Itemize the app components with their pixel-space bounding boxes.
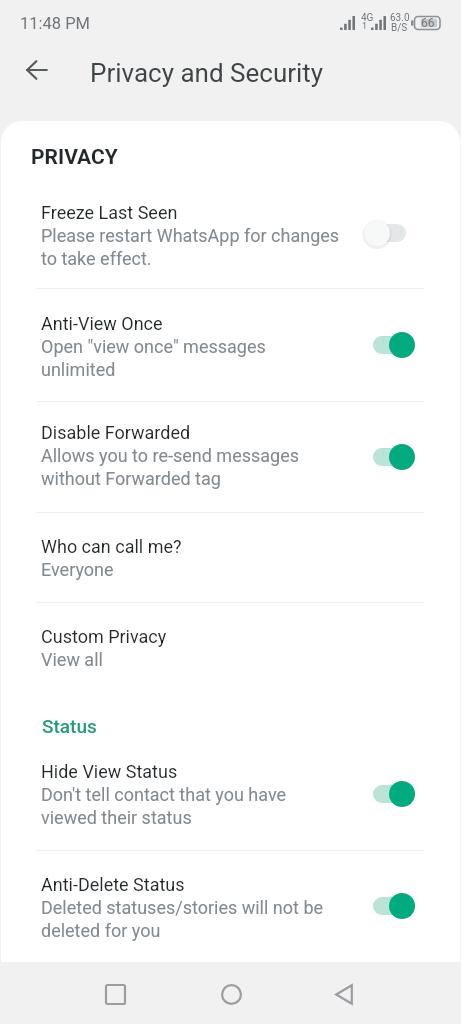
staticText: 63.0 (390, 12, 410, 24)
staticText: Please restart WhatsApp for changes to t… (41, 224, 340, 269)
button[interactable]: Disabled (363, 217, 417, 249)
staticText: PRIVACY (31, 145, 118, 170)
button[interactable]: Recent apps (87, 966, 143, 1022)
button[interactable]: Back (15, 48, 59, 92)
staticText: Everyone (41, 558, 114, 581)
button[interactable]: Who can call me? (1, 535, 460, 581)
button[interactable]: Enabled (363, 778, 417, 810)
button[interactable]: Freeze Last Seen (1, 201, 460, 269)
staticText: Open "view once" messages unlimited (41, 335, 266, 380)
button[interactable]: Anti-Delete Status (1, 873, 460, 941)
staticText: Hide View Status (41, 760, 178, 783)
staticText: Allows you to re-send messages without F… (41, 444, 300, 489)
button[interactable]: Home (203, 966, 259, 1022)
staticText: Status (42, 715, 97, 737)
staticText: Privacy and Security (90, 58, 324, 88)
staticText: Anti-Delete Status (41, 873, 185, 896)
button[interactable]: Enabled (363, 329, 417, 361)
button[interactable]: Disable Forwarded (1, 421, 460, 489)
button[interactable]: Anti-View Once (1, 312, 460, 380)
staticText: Custom Privacy (41, 625, 167, 648)
staticText: View all (41, 648, 103, 671)
staticText: B/S (391, 22, 408, 34)
staticText: 4G (361, 12, 374, 24)
button[interactable]: Enabled (363, 441, 417, 473)
staticText: 1 (362, 21, 368, 32)
staticText: 66 (421, 16, 435, 30)
staticText: Deleted statuses/stories will not be del… (41, 896, 324, 941)
staticText: Who can call me? (41, 535, 182, 558)
button[interactable]: Custom Privacy (1, 625, 460, 671)
staticText: Freeze Last Seen (41, 201, 178, 224)
staticText: Disable Forwarded (41, 421, 191, 444)
button[interactable]: Hide View Status (1, 760, 460, 828)
button[interactable]: Back (316, 966, 372, 1022)
staticText: 11:48 PM (20, 14, 90, 33)
staticText: Anti-View Once (41, 312, 163, 335)
button[interactable]: Enabled (363, 890, 417, 922)
staticText: Don't tell contact that you have viewed … (41, 783, 287, 828)
